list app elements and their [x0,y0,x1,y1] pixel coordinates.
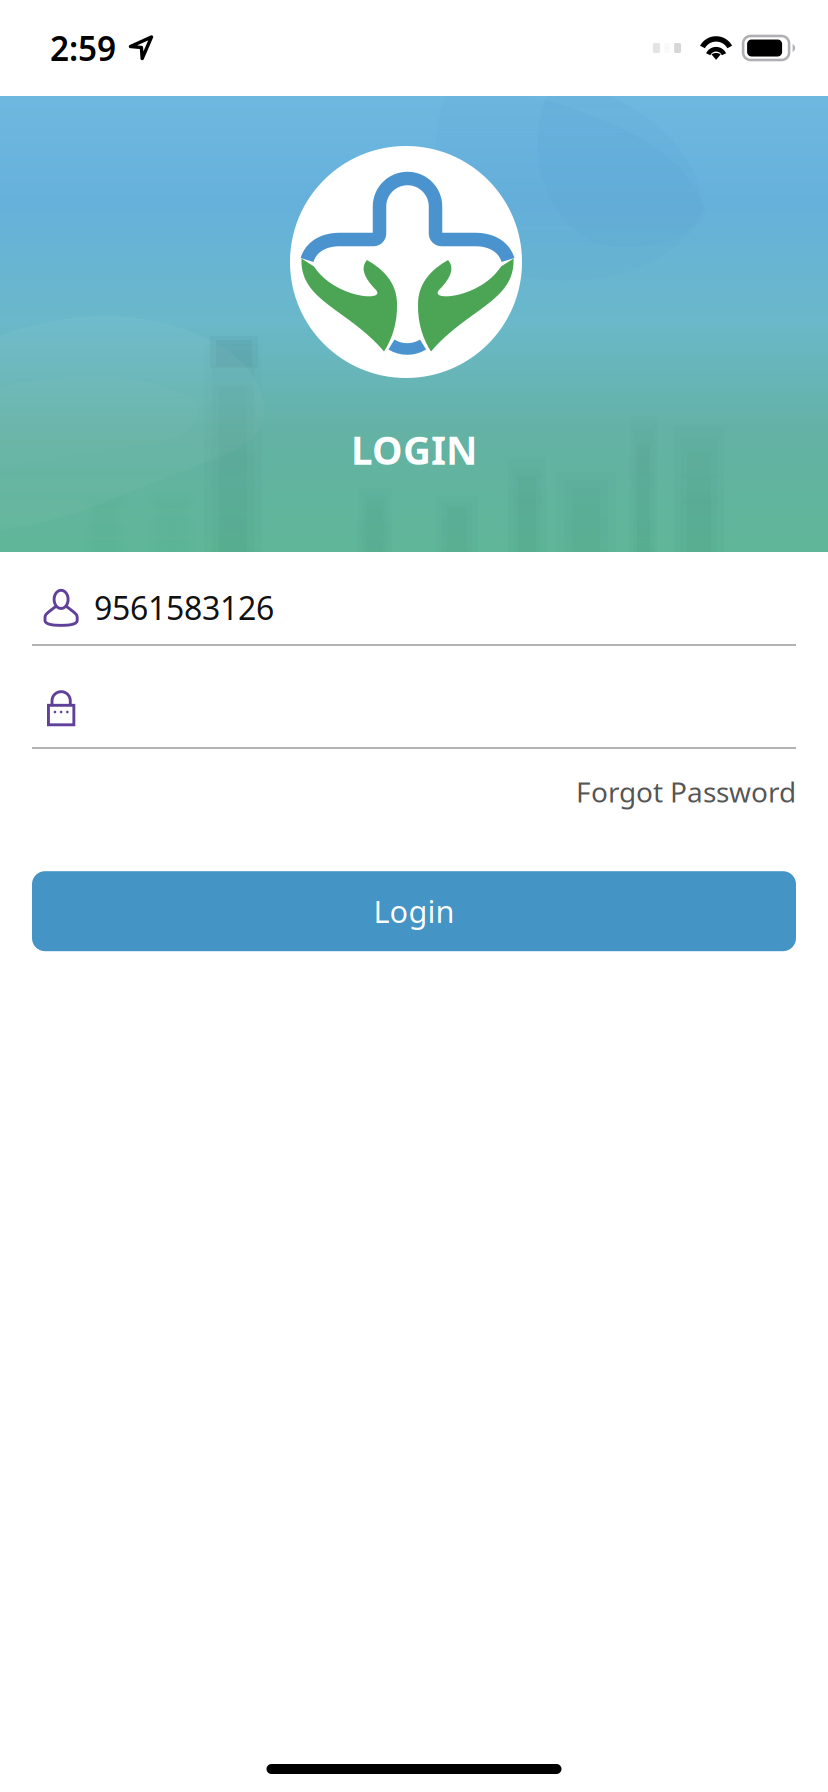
button[interactable]: Forgot Password [576,773,796,810]
staticText: 2:59 [50,26,116,70]
button[interactable]: Password [0,646,828,726]
button[interactable]: 9561583126 [0,552,828,627]
button[interactable]: Login [32,871,796,951]
staticText: Login [373,891,454,931]
staticText: Forgot Password [576,773,796,810]
staticText: LOGIN [351,424,477,475]
staticText: 9561583126 [94,586,274,629]
